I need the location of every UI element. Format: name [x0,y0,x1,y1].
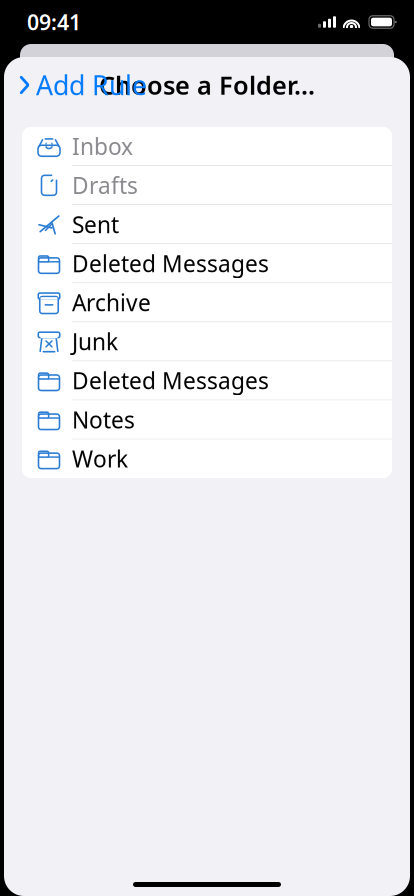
button[interactable]: Notes [22,400,392,439]
staticText: Inbox [72,131,133,161]
staticText: Sent [72,209,119,239]
staticText: 09:41 [27,8,81,36]
button[interactable]: Archive [22,283,392,322]
staticText: Choose a Folder... [99,68,315,102]
button[interactable]: Drafts [22,166,392,205]
staticText: Work [72,444,128,474]
button[interactable]: Deleted Messages [22,244,392,283]
button[interactable]: Add Rule [4,61,147,109]
staticText: Deleted Messages [72,365,269,396]
staticText: Archive [72,287,151,317]
button[interactable]: Deleted Messages [22,361,392,400]
button[interactable]: Inbox [22,127,392,166]
staticText: Junk [72,326,118,356]
button[interactable]: Work [22,439,392,478]
staticText: Notes [72,404,135,435]
staticText: Drafts [72,170,138,200]
button[interactable]: Sent [22,205,392,244]
button[interactable]: Junk [22,322,392,361]
staticText: Add Rule [36,67,147,103]
staticText: Deleted Messages [72,248,269,278]
